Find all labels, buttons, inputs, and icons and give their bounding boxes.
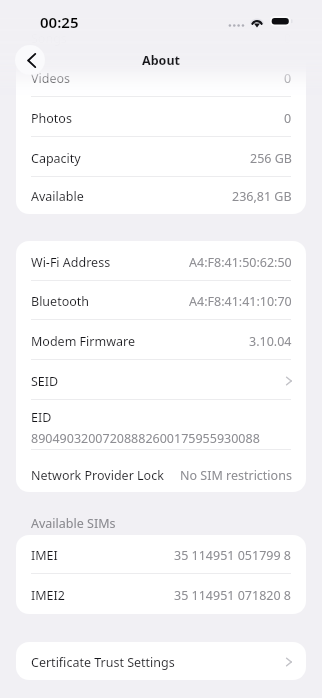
- staticText: 256 GB: [250, 150, 292, 167]
- staticText: SEID: [31, 373, 59, 390]
- staticText: 3.10.04: [249, 333, 292, 350]
- staticText: 0: [284, 110, 292, 127]
- button[interactable]: Back: [15, 45, 45, 75]
- button[interactable]: Modem Firmware: [16, 320, 306, 360]
- staticText: Modem Firmware: [31, 333, 135, 350]
- button[interactable]: Certificate Trust Settings: [16, 642, 306, 680]
- staticText: 89049032007208882600175955930088: [31, 430, 260, 447]
- staticText: 35 114951 051799 8: [174, 547, 292, 564]
- staticText: 00:25: [40, 12, 79, 32]
- staticText: EID: [31, 409, 52, 426]
- staticText: Capacity: [31, 150, 81, 167]
- staticText: Network Provider Lock: [31, 467, 164, 484]
- staticText: A4:F8:41:41:10:70: [189, 293, 292, 310]
- staticText: Available: [31, 188, 84, 205]
- staticText: IMEI2: [31, 587, 65, 604]
- staticText: Videos: [31, 70, 71, 87]
- staticText: 0: [284, 70, 292, 87]
- button[interactable]: Wi-Fi Address: [16, 241, 306, 281]
- staticText: A4:F8:41:50:62:50: [189, 254, 292, 271]
- button[interactable]: Capacity: [16, 137, 306, 177]
- staticText: IMEI: [31, 547, 58, 564]
- button[interactable]: IMEI: [16, 535, 306, 574]
- staticText: Wi-Fi Address: [31, 254, 111, 271]
- staticText: Bluetooth: [31, 293, 90, 310]
- button[interactable]: IMEI2: [16, 574, 306, 614]
- staticText: Photos: [31, 110, 72, 127]
- staticText: Certificate Trust Settings: [31, 654, 175, 671]
- button[interactable]: Videos: [16, 57, 306, 97]
- staticText: About: [142, 52, 180, 68]
- staticText: 236,81 GB: [232, 188, 292, 205]
- button[interactable]: Bluetooth: [16, 281, 306, 320]
- button[interactable]: Songs: [16, 17, 306, 57]
- button[interactable]: EID: [16, 400, 306, 450]
- button[interactable]: Photos: [16, 97, 306, 137]
- staticText: Available SIMs: [31, 515, 116, 532]
- staticText: 35 114951 071820 8: [174, 587, 292, 604]
- button[interactable]: Network Provider Lock: [16, 450, 306, 492]
- staticText: No SIM restrictions: [180, 467, 292, 484]
- button[interactable]: Available: [16, 177, 306, 214]
- button[interactable]: SEID: [16, 360, 306, 400]
